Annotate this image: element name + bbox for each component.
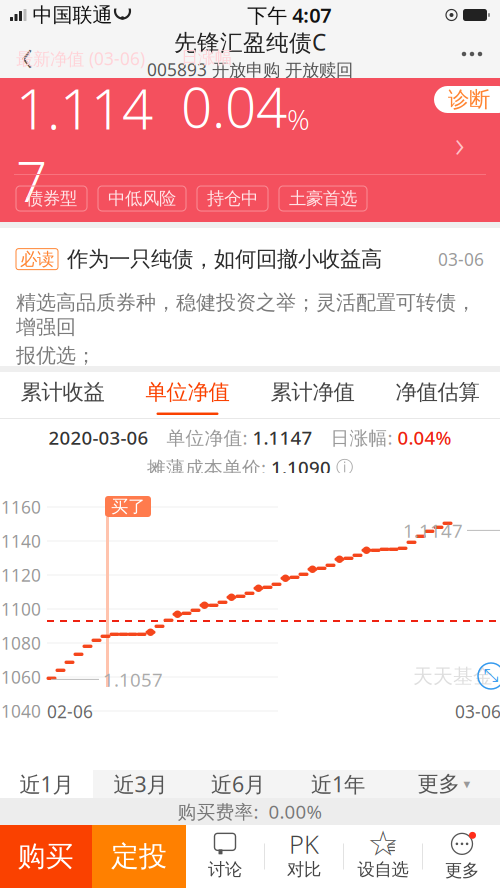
- staticText: PK: [289, 827, 319, 861]
- staticText: 购买费率: 0.00%: [177, 799, 322, 824]
- button[interactable]: Back: [0, 30, 54, 78]
- button[interactable]: 累计收益: [0, 372, 125, 418]
- staticText: 1.1120: [0, 563, 41, 586]
- button[interactable]: 累计净值: [250, 372, 375, 418]
- staticText: 单位净值:: [148, 425, 252, 450]
- staticText: 定投: [111, 839, 167, 874]
- staticText: 净值估算: [395, 379, 479, 405]
- staticText: 1.1060: [0, 665, 41, 688]
- button[interactable]: 更多: [388, 770, 500, 798]
- staticText: 近6月: [211, 770, 265, 798]
- button[interactable]: PK: [265, 825, 343, 888]
- staticText: 购买: [17, 839, 73, 874]
- staticText: 对比: [287, 859, 321, 880]
- staticText: 诊断: [448, 86, 490, 113]
- staticText: 02-06: [47, 700, 93, 723]
- staticText: 1.1140: [0, 529, 41, 552]
- staticText: 天天基金: [413, 664, 493, 689]
- staticText: 1.1147: [403, 518, 463, 543]
- button[interactable]: ☆: [344, 825, 422, 888]
- staticText: 单位净值: [145, 379, 229, 405]
- staticText: ▾: [463, 776, 470, 791]
- button[interactable]: 定投: [92, 825, 186, 888]
- staticText: ›: [455, 120, 465, 167]
- staticText: 1.1147: [252, 425, 312, 450]
- button[interactable]: 近1月: [0, 770, 93, 798]
- button[interactable]: 购买: [0, 825, 92, 888]
- staticText: 日涨幅: [181, 47, 232, 68]
- staticText: 更多: [445, 860, 479, 881]
- staticText: 1.1090: [271, 455, 336, 480]
- staticText: 作为一只纯债，如何回撤小收益高: [67, 246, 382, 272]
- staticText: 土豪首选: [289, 188, 357, 209]
- staticText: 更多: [417, 771, 459, 797]
- staticText: 1.1040: [0, 699, 41, 722]
- staticText: ‹: [21, 24, 33, 84]
- staticText: 债券型: [26, 188, 77, 209]
- button[interactable]: 必读: [0, 228, 500, 366]
- staticText: 近1月: [19, 770, 73, 798]
- button[interactable]: 近1年: [288, 770, 388, 798]
- staticText: 近3月: [113, 770, 167, 798]
- button[interactable]: 近6月: [188, 770, 288, 798]
- staticText: 下午 4:07: [247, 2, 331, 28]
- button[interactable]: 诊断: [434, 86, 500, 113]
- staticText: 03-06: [455, 700, 500, 723]
- staticText: ⤡: [483, 667, 498, 685]
- staticText: 讨论: [208, 859, 242, 880]
- staticText: 005893 开放申购 开放赎回: [147, 58, 353, 81]
- staticText: 近1年: [311, 770, 365, 798]
- staticText: 中国联通: [26, 3, 112, 27]
- staticText: 先锋汇盈纯债C: [174, 27, 326, 57]
- button[interactable]: 净值估算: [375, 372, 500, 418]
- staticText: 1.1160: [0, 495, 41, 518]
- staticText: 1.1100: [0, 597, 41, 620]
- staticText: 精选高品质券种，稳健投资之举；灵活配置可转债，增强回: [16, 290, 476, 339]
- button[interactable]: More options: [444, 30, 500, 78]
- button[interactable]: 讨论: [186, 825, 264, 888]
- staticText: 1.1057: [103, 667, 163, 692]
- staticText: 设自选: [357, 859, 408, 880]
- staticText: 累计收益: [20, 379, 104, 405]
- staticText: 摊薄成本单价:: [147, 455, 271, 480]
- button[interactable]: 单位净值: [125, 372, 250, 418]
- staticText: 持仓中: [207, 188, 258, 209]
- button[interactable]: Expand chart: [475, 660, 500, 692]
- staticText: 必读: [20, 248, 54, 270]
- staticText: 中低风险: [108, 188, 176, 209]
- staticText: 0.04: [181, 70, 287, 143]
- staticText: 日涨幅:: [312, 425, 397, 450]
- staticText: 报优选；: [16, 343, 96, 368]
- staticText: %: [287, 101, 310, 138]
- button[interactable]: 更多: [423, 825, 500, 888]
- staticText: ⓘ: [336, 457, 353, 478]
- staticText: 2020-03-06: [48, 425, 148, 450]
- staticText: ☆: [367, 824, 398, 863]
- staticText: 累计净值: [270, 379, 354, 405]
- staticText: 最新净值 (03-06): [16, 47, 145, 70]
- button[interactable]: 近3月: [93, 770, 188, 798]
- staticText: 1.1080: [0, 631, 41, 654]
- staticText: 1.1147: [16, 72, 153, 217]
- staticText: 0.04%: [397, 425, 451, 450]
- staticText: 03-06: [438, 248, 484, 271]
- staticText: 买了: [111, 496, 145, 517]
